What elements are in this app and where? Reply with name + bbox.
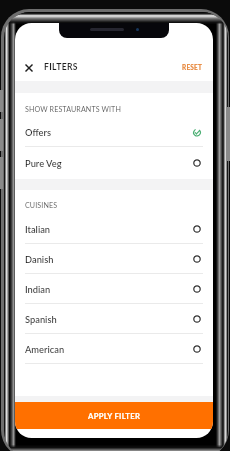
staticText: RESET: [182, 64, 203, 72]
staticText: CUISINES: [25, 201, 58, 210]
staticText: Offers: [25, 127, 51, 138]
button[interactable]: Pure Veg: [15, 147, 213, 179]
staticText: Danish: [25, 254, 54, 265]
button[interactable]: RESET: [177, 58, 207, 77]
button[interactable]: Indian: [15, 274, 213, 304]
button[interactable]: APPLY FILTER: [15, 402, 213, 429]
staticText: Spanish: [25, 314, 57, 325]
button[interactable]: American: [15, 334, 213, 364]
button[interactable]: Close: [19, 58, 38, 77]
button[interactable]: Spanish: [15, 304, 213, 334]
staticText: Pure Veg: [25, 158, 62, 169]
staticText: American: [25, 344, 65, 355]
staticText: Italian: [25, 224, 51, 235]
button[interactable]: Offers: [15, 117, 213, 147]
staticText: FILTERS: [44, 62, 78, 72]
staticText: SHOW RESTAURANTS WITH: [25, 105, 121, 114]
button[interactable]: Italian: [15, 214, 213, 244]
staticText: Indian: [25, 284, 51, 295]
button[interactable]: Danish: [15, 244, 213, 274]
staticText: APPLY FILTER: [88, 411, 141, 420]
